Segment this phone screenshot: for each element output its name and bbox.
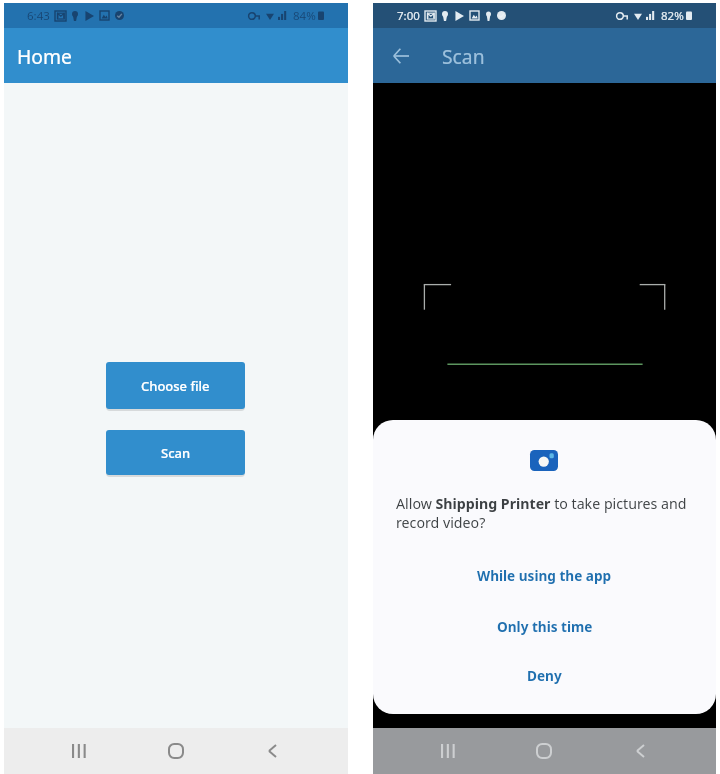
staticText: Allow Shipping Printer to take pictures … [396,494,696,532]
button[interactable]: Back [252,728,292,774]
button[interactable]: Choose file [106,362,245,409]
button[interactable]: Home [156,728,196,774]
staticText: Choose file [141,377,210,395]
staticText: Scan [442,43,485,69]
button[interactable]: Back [620,728,660,774]
button[interactable]: Home [524,728,564,774]
button[interactable]: Recents [59,728,99,774]
staticText: 7:00 [397,8,420,24]
staticText: 84% [293,8,316,24]
button[interactable]: Back [385,40,417,72]
staticText: Deny [527,666,562,685]
staticText: Home [17,43,72,69]
staticText: 82% [661,8,684,24]
button[interactable]: Only this time [373,614,716,639]
button[interactable]: While using the app [373,563,716,588]
staticText: Only this time [497,617,593,636]
button[interactable]: Recents [428,728,468,774]
button[interactable]: Scan [106,430,245,475]
staticText: 6:43 [27,8,50,24]
staticText: While using the app [477,566,612,585]
staticText: Scan [161,444,191,462]
button[interactable]: Deny [373,663,716,688]
